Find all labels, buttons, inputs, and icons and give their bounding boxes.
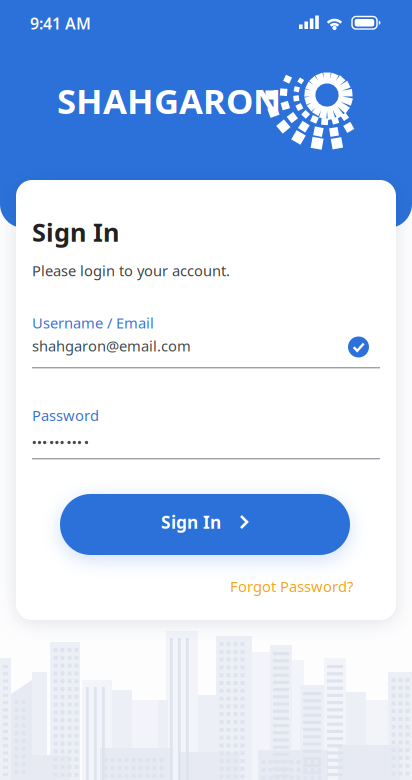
staticText: Username / Email xyxy=(32,313,154,332)
staticText: 9:41 AM xyxy=(30,13,91,34)
button[interactable]: Sign In xyxy=(60,494,350,555)
staticText: Forgot Password? xyxy=(230,576,353,596)
staticText: Password xyxy=(32,405,99,425)
button[interactable]: Password xyxy=(32,405,380,459)
button[interactable]: Forgot Password? xyxy=(230,576,353,596)
staticText: Please login to your account. xyxy=(32,261,230,280)
staticText: Sign In xyxy=(32,215,119,249)
staticText: shahgaron@email.com xyxy=(32,336,191,355)
staticText: SHAHGARON xyxy=(57,77,281,123)
staticText: Sign In xyxy=(161,510,221,533)
button[interactable]: Username / Email xyxy=(32,313,380,369)
